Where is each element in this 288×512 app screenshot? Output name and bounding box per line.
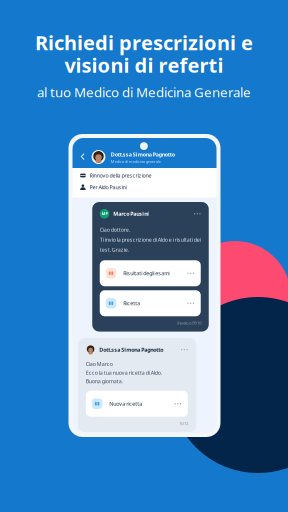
staticText: Rinnovo della prescrizione [89, 172, 151, 179]
staticText: Ciao Marco [86, 360, 113, 368]
staticText: Ciao dottore. [100, 226, 130, 233]
staticText: Marco Pausini [113, 210, 149, 217]
staticText: al tuo Medico di Medicina Generale [37, 83, 251, 101]
staticText: Buona giornata. [86, 378, 123, 385]
staticText: MP [101, 211, 107, 216]
staticText: Dott.ssa Simona Pagnotto [99, 346, 163, 353]
staticText: Per Aldo Pausini [89, 184, 126, 191]
staticText: Inviato a 09:10 [177, 320, 201, 326]
button[interactable]: Nuova ricetta [86, 391, 188, 417]
staticText: Dott.ssa Simona Pagnotto [111, 151, 175, 158]
staticText: Richiedi prescrizioni e [35, 29, 253, 56]
button[interactable]: Risultati degli esami [100, 260, 201, 286]
staticText: test. Grazie. [100, 246, 129, 253]
staticText: Ecco la tua nuova ricetta di Aldo. [86, 369, 162, 376]
staticText: Nuova ricetta [109, 400, 142, 407]
staticText: Ti invio la prescrizione di Aldo e i ris… [100, 236, 201, 243]
staticText: visioni di referti [64, 52, 223, 78]
button[interactable]: Ricetta [100, 290, 201, 316]
staticText: Medico di medicina generale [111, 159, 161, 164]
staticText: Risultati degli esami [123, 270, 170, 277]
button[interactable]: Back [76, 149, 89, 164]
staticText: Ricetta [123, 300, 140, 307]
staticText: 10:12 [179, 421, 188, 426]
